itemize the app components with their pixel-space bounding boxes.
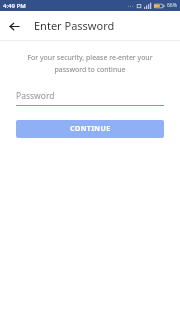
staticText: Enter Password	[34, 18, 115, 33]
button[interactable]: Back	[5, 17, 23, 35]
staticText: Password	[16, 90, 55, 102]
button[interactable]: Password	[16, 90, 164, 106]
staticText: For your security, please re-enter your …	[12, 53, 168, 74]
staticText: 4:49 PM	[3, 2, 26, 10]
button[interactable]: CONTINUE	[16, 120, 164, 138]
staticText: 66%	[167, 2, 177, 9]
staticText: CONTINUE	[70, 124, 111, 134]
